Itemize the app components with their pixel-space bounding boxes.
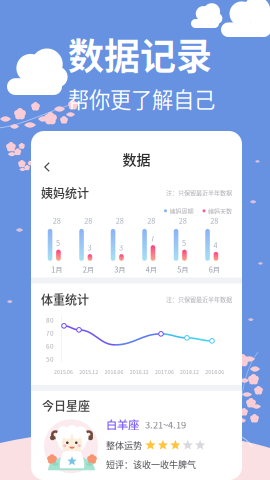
staticText: 28 — [53, 215, 61, 226]
staticText: 7 — [150, 233, 154, 244]
staticText: 数据记录 — [68, 28, 212, 80]
staticText: 注：只保留最近半年数据 — [166, 295, 232, 304]
staticText: 2016.06 — [104, 368, 123, 375]
staticText: 今日星座 — [42, 397, 90, 414]
staticText: 姨妈统计 — [41, 184, 89, 201]
staticText: 60 — [46, 341, 54, 351]
staticText: 2018.12 — [180, 368, 199, 375]
staticText: 2016.12 — [130, 368, 149, 375]
staticText: 帮你更了解自己 — [68, 83, 215, 114]
staticText: 28 — [179, 215, 187, 226]
button[interactable]: 返回 — [31, 156, 61, 178]
staticText: 4月 — [146, 264, 157, 274]
staticText: 体重统计 — [41, 290, 89, 308]
staticText: 2018.06 — [205, 368, 224, 375]
staticText: 3 — [87, 242, 91, 253]
staticText: 6月 — [209, 264, 220, 274]
staticText: 3.21~4.19 — [145, 418, 186, 431]
staticText: 1月 — [51, 264, 62, 274]
staticText: 注：只保留最近半年数据 — [166, 188, 232, 197]
staticText: 70 — [46, 328, 54, 338]
staticText: 28 — [210, 215, 218, 226]
staticText: 28 — [84, 215, 92, 226]
staticText: 3 — [119, 242, 123, 253]
staticText: 2015.06 — [54, 368, 73, 375]
staticText: 4 — [213, 240, 217, 250]
staticText: 28 — [116, 215, 124, 226]
staticText: 5 — [56, 237, 60, 248]
staticText: 白羊座 — [106, 416, 139, 433]
staticText: 2017.06 — [155, 368, 174, 375]
staticText: 2月 — [83, 264, 94, 274]
staticText: 姨妈周期 — [169, 206, 193, 215]
staticText: 姨妈天数 — [208, 206, 232, 215]
staticText: 5月 — [177, 264, 188, 274]
staticText: 28 — [147, 215, 155, 226]
staticText: 短评：该收一收牛脾气 — [106, 458, 196, 471]
staticText: 数据 — [122, 149, 150, 169]
staticText: 50 — [46, 354, 54, 364]
staticText: 3月 — [114, 264, 125, 274]
staticText: 5 — [182, 237, 186, 248]
staticText: 80 — [46, 315, 54, 325]
staticText: 整体运势 — [106, 439, 142, 452]
staticText: 2015.12 — [79, 368, 98, 375]
